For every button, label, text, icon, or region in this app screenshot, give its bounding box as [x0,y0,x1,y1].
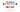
staticText: Start [7,5,12,9]
button[interactable]: Start [6,6,14,8]
staticText: Today [6,1,14,4]
